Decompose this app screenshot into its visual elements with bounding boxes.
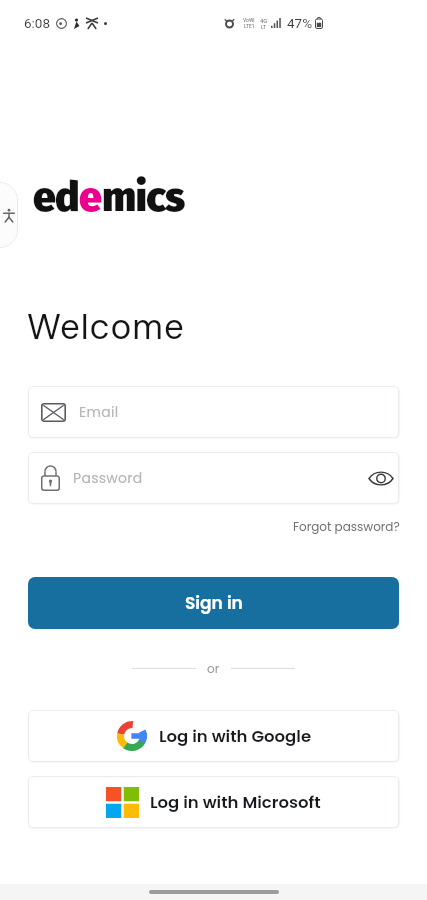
button[interactable]: Log in with Microsoft [28, 776, 399, 828]
staticText: e [79, 173, 102, 222]
staticText: LTE1 [244, 23, 255, 29]
staticText: Email [79, 402, 119, 422]
button[interactable]: Email [28, 386, 399, 438]
staticText: 4G [260, 17, 268, 24]
staticText: LT [261, 24, 267, 30]
staticText: Sign in [185, 591, 243, 615]
staticText: Log in with Microsoft [150, 791, 321, 814]
staticText: Password [73, 468, 143, 488]
staticText: mics [102, 173, 185, 222]
button[interactable]: Sign in [28, 577, 399, 629]
button[interactable]: Password [28, 452, 399, 504]
staticText: Welcome [27, 304, 185, 350]
staticText: VoWi [243, 17, 255, 23]
button[interactable]: Forgot password? [291, 516, 402, 537]
button[interactable]: Log in with Google [28, 710, 399, 762]
button[interactable]: Accessibility [0, 182, 18, 248]
staticText: Forgot password? [293, 518, 400, 535]
button[interactable]: Show password [366, 463, 396, 493]
staticText: Log in with Google [159, 725, 312, 748]
staticText: 6:08 [24, 15, 51, 31]
staticText: 47% [287, 15, 313, 31]
staticText: ed [33, 173, 79, 222]
staticText: or [207, 660, 220, 677]
